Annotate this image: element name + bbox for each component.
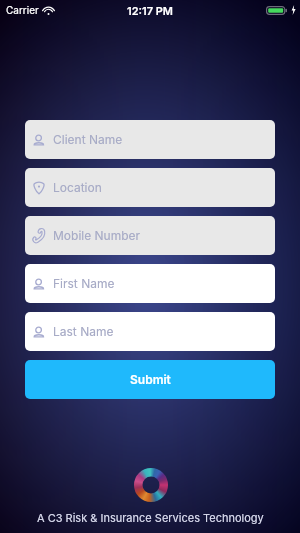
staticText: Carrier [6, 4, 39, 16]
button[interactable]: Location [25, 168, 275, 207]
button[interactable]: Last Name [25, 312, 275, 351]
staticText: Location [53, 180, 102, 195]
staticText: Mobile Number [53, 228, 141, 243]
staticText: Client Name [53, 132, 123, 147]
button[interactable]: Mobile Number [25, 216, 275, 255]
button[interactable]: First Name [25, 264, 275, 303]
staticText: 12:17 PM [127, 4, 174, 17]
staticText: Last Name [53, 324, 114, 339]
button[interactable]: Client Name [25, 120, 275, 159]
staticText: First Name [53, 276, 115, 291]
staticText: Submit [130, 372, 171, 387]
staticText: A C3 Risk & Insurance Services Technolog… [37, 511, 264, 524]
button[interactable]: Submit [25, 360, 275, 399]
